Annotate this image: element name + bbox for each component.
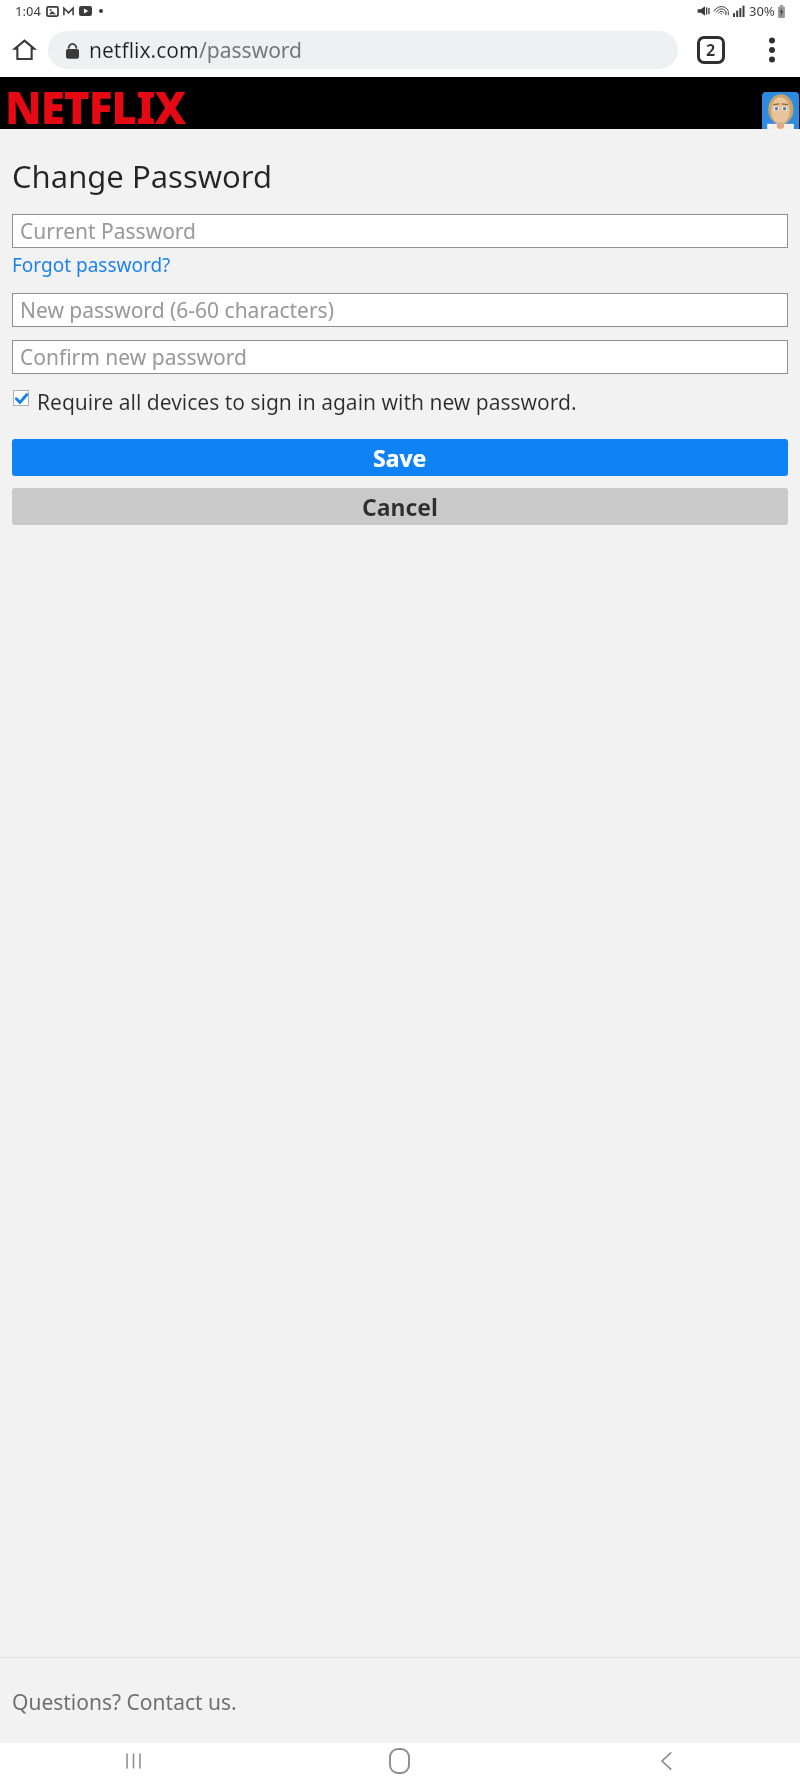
staticText: Forgot password? [12, 252, 171, 278]
button[interactable]: Save [12, 439, 788, 476]
staticText: Confirm new password [20, 343, 247, 372]
staticText: Require all devices to sign in again wit… [37, 388, 577, 417]
staticText: Current Password [20, 217, 197, 246]
staticText: netflix.com [89, 36, 199, 65]
button[interactable]: Profile [762, 92, 799, 129]
staticText: /password [199, 36, 303, 65]
button[interactable]: New password (6-60 characters) [12, 293, 788, 327]
button[interactable]: Current Password [12, 214, 788, 248]
button[interactable]: More options [744, 22, 800, 77]
button[interactable]: netflix.com [48, 31, 678, 69]
button[interactable]: Require all devices to sign in again wit… [12, 388, 788, 417]
staticText: 1:04 [15, 2, 41, 20]
staticText: Save [373, 442, 427, 473]
button[interactable]: Home [266, 1743, 533, 1778]
staticText: New password (6-60 characters) [20, 296, 334, 325]
staticText: Questions? Contact us. [12, 1688, 237, 1717]
button[interactable]: Questions? Contact us. [12, 1688, 237, 1717]
staticText: Change Password [12, 155, 273, 197]
staticText: NETFLIX [5, 77, 186, 129]
button[interactable]: Back [533, 1743, 800, 1778]
staticText: 2 [706, 39, 716, 61]
button[interactable]: Home [0, 22, 48, 77]
button[interactable]: Forgot password? [12, 252, 171, 278]
button[interactable]: Confirm new password [12, 340, 788, 374]
staticText: Cancel [362, 491, 438, 522]
button[interactable]: Tabs, 2 open [678, 22, 744, 77]
staticText: 30% [749, 2, 775, 20]
button[interactable]: Cancel [12, 488, 788, 525]
button[interactable]: Recent apps [0, 1743, 266, 1778]
